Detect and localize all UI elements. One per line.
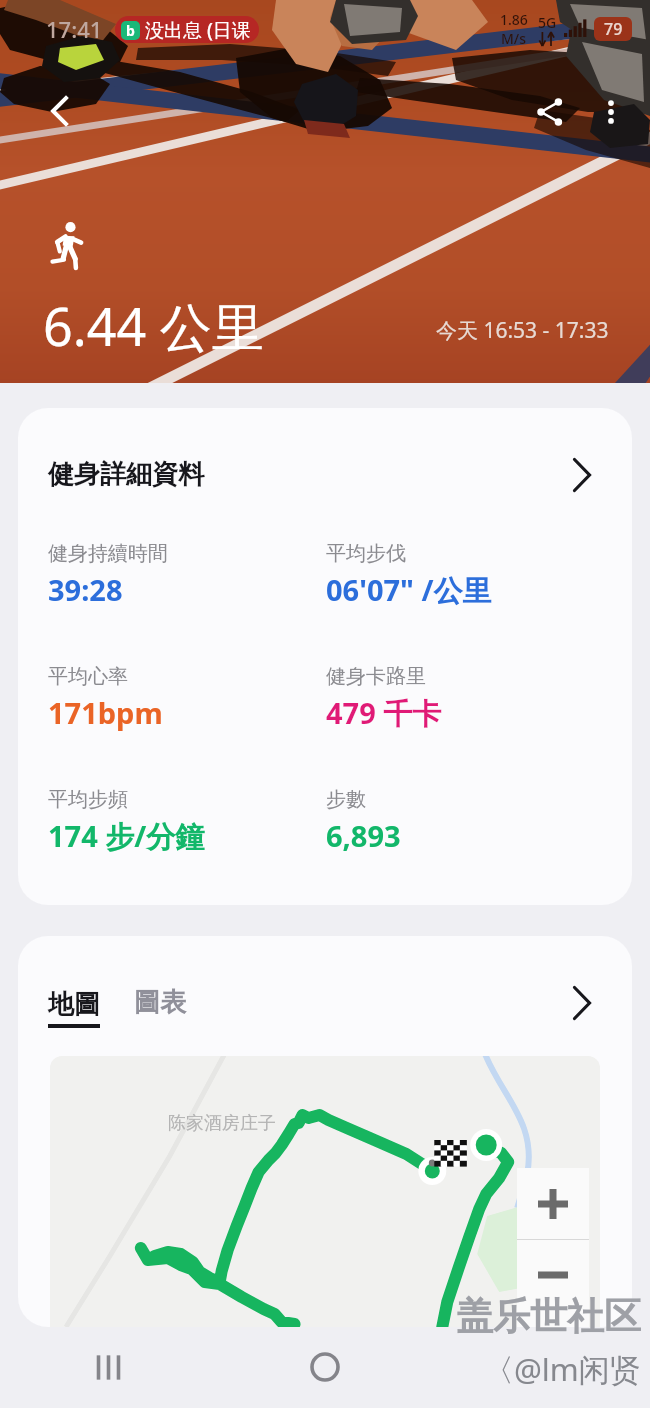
staticText: 1.86 [500, 10, 528, 29]
staticText: 陈家酒房庄子 [168, 1112, 276, 1135]
staticText: 17:41 [46, 14, 103, 44]
button[interactable]: 健身詳細資料 [18, 408, 632, 541]
staticText: 圖表 [134, 986, 186, 1019]
staticText: 〈@lm闲贤 [483, 1348, 641, 1390]
staticText: 地圖 [48, 988, 100, 1021]
staticText: 今天 16:53 - 17:33 [436, 316, 609, 345]
staticText: 5G [538, 13, 557, 32]
staticText: 盖乐世社区 [456, 1293, 641, 1340]
button[interactable]: 圖表 [134, 986, 186, 1030]
button[interactable]: Back [433, 1326, 650, 1408]
button[interactable]: Recent apps [0, 1326, 216, 1408]
staticText: 步數 [326, 787, 366, 812]
staticText: 6,893 [326, 816, 401, 855]
staticText: 健身持續時間 [48, 541, 168, 566]
staticText: 平均步頻 [48, 787, 128, 812]
staticText: 39:28 [48, 570, 123, 609]
staticText: 479 千卡 [326, 693, 442, 733]
staticText: 平均步伐 [326, 541, 406, 566]
button[interactable]: More options [586, 87, 636, 137]
staticText: 171bpm [48, 693, 163, 732]
staticText: 健身卡路里 [326, 664, 426, 689]
staticText: 平均心率 [48, 664, 128, 689]
button[interactable]: Share [522, 84, 578, 140]
staticText: 79 [604, 18, 623, 40]
staticText: M/s [501, 29, 527, 48]
staticText: 没出息 (日课 [145, 17, 251, 43]
button[interactable]: Home [216, 1326, 433, 1408]
button[interactable]: Zoom out [517, 1240, 589, 1327]
staticText: b [126, 21, 135, 40]
staticText: 174 步/分鐘 [48, 816, 205, 856]
staticText: 6.44 公里 [43, 290, 264, 361]
staticText: 健身詳細資料 [48, 458, 204, 491]
button[interactable]: Zoom in [517, 1168, 589, 1239]
staticText: 06'07" /公里 [326, 570, 492, 610]
button[interactable]: 地圖 [48, 988, 100, 1028]
button[interactable]: Expand map [573, 986, 591, 1031]
button[interactable]: Back [36, 86, 86, 136]
